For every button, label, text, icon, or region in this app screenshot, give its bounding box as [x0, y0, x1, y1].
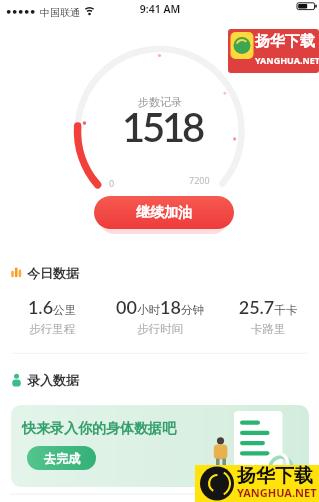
staticText: 录入数据	[27, 372, 79, 388]
staticText: 快来录入你的身体数据吧	[22, 420, 176, 438]
staticText: 去完成	[44, 451, 80, 466]
button[interactable]: 去完成	[27, 446, 96, 470]
staticText: 00小时18分钟	[105, 296, 215, 318]
staticText: 步数记录	[110, 95, 210, 109]
staticText: 步行里程	[12, 322, 92, 336]
staticText: 卡路里	[228, 322, 308, 336]
staticText: 步行时间	[105, 322, 215, 336]
staticText: 扬华下载	[255, 32, 315, 51]
staticText: 0	[109, 177, 115, 189]
button[interactable]	[11, 405, 309, 487]
staticText: YANGHUA.NET	[237, 485, 317, 500]
staticText: 1.6公里	[12, 296, 92, 318]
button[interactable]: 继续加油	[94, 196, 234, 229]
staticText: YANGHUA.NET	[255, 54, 319, 66]
staticText: 中国联通	[40, 6, 80, 19]
staticText: 25.7千卡	[228, 296, 308, 318]
staticText: 扬华下载	[237, 464, 313, 488]
staticText: 1518	[62, 103, 262, 151]
staticText: 继续加油	[136, 204, 192, 222]
staticText: 9:41 AM	[110, 2, 210, 16]
staticText: 今日数据	[27, 265, 79, 281]
staticText: 7200	[189, 174, 210, 186]
